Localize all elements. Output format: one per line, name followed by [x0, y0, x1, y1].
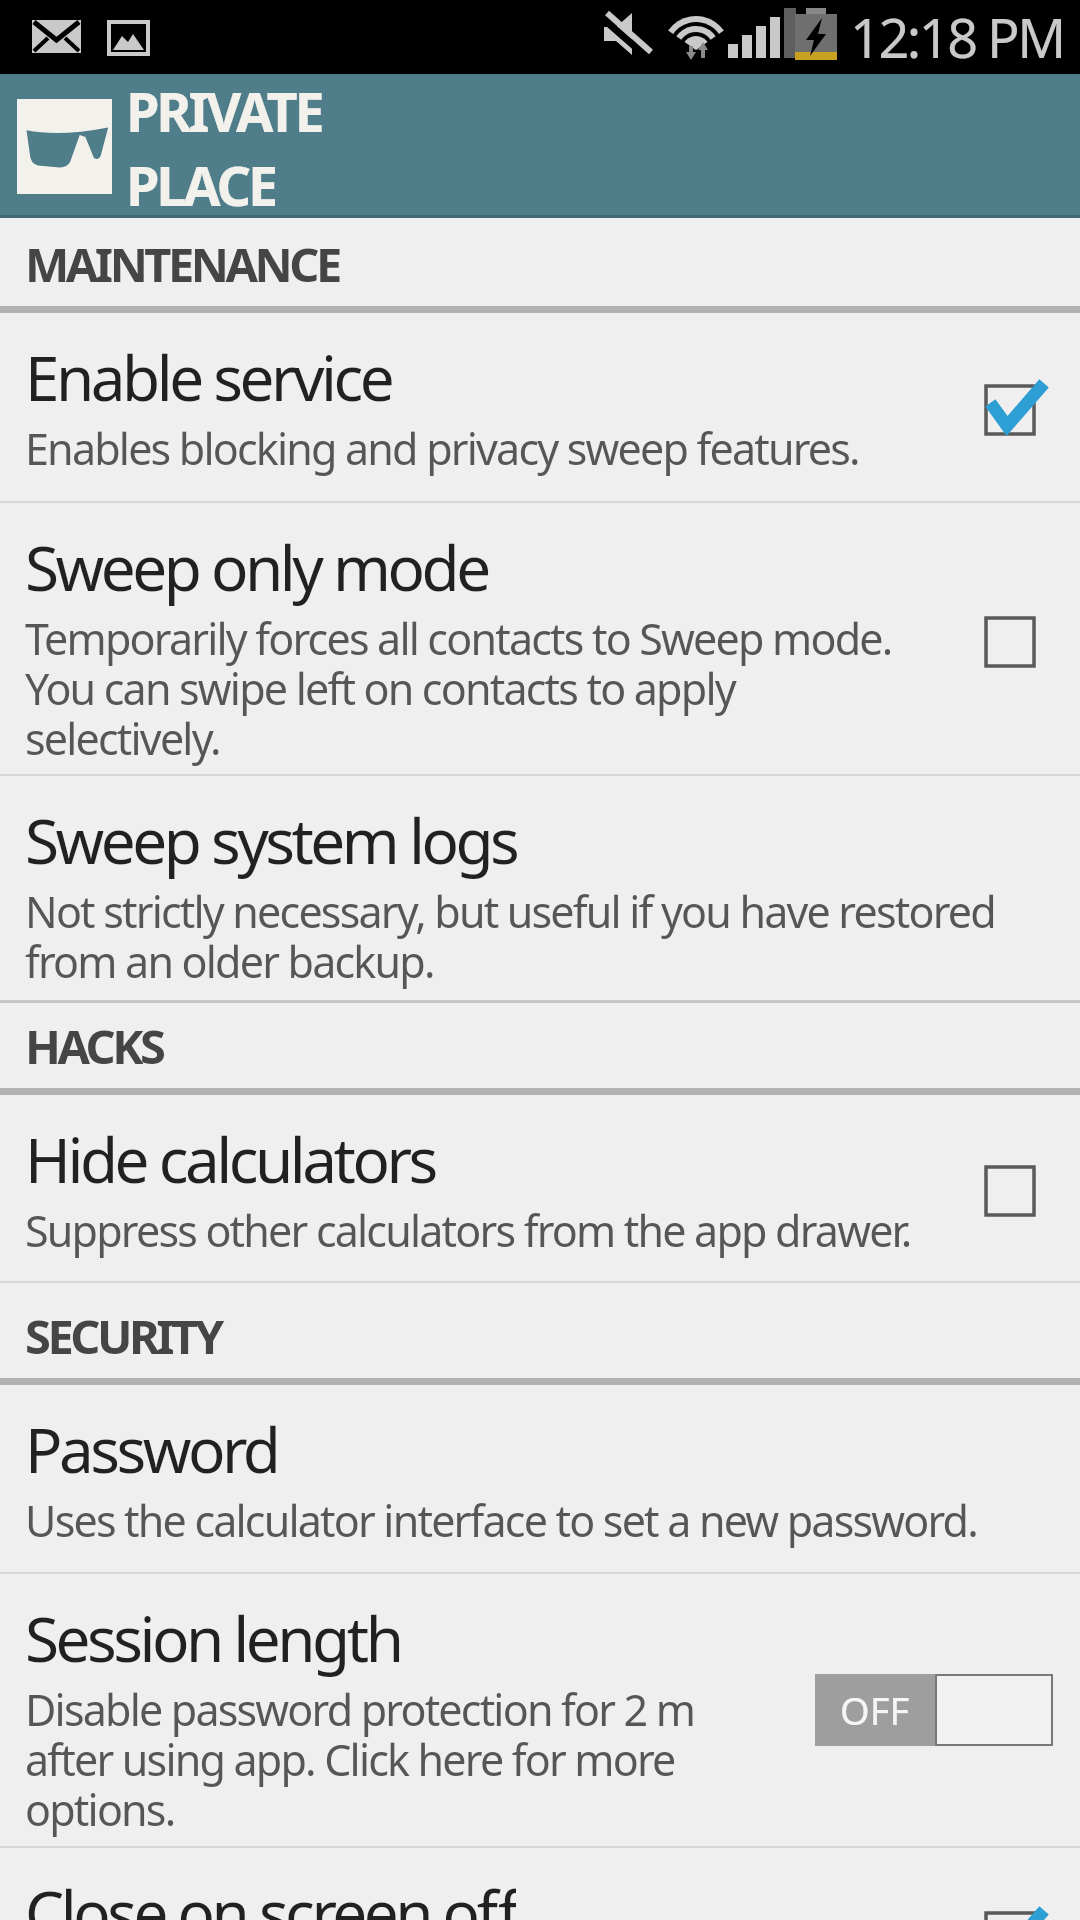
button[interactable]: Sweep only mode [0, 503, 1080, 774]
button[interactable]: Close on screen off [0, 1848, 1080, 1920]
staticText: Enables blocking and privacy sweep featu… [25, 419, 859, 478]
staticText: Sweep only mode [25, 525, 488, 609]
button[interactable]: Password [0, 1385, 1080, 1572]
staticText: Enable service [25, 335, 392, 419]
button[interactable]: Session length [0, 1574, 1080, 1846]
staticText: OFF [840, 1684, 910, 1736]
staticText: HACKS [25, 1014, 163, 1078]
button[interactable]: OFF [815, 1674, 1053, 1746]
staticText: MAINTENANCE [25, 232, 339, 296]
button[interactable]: Sweep system logs [0, 776, 1080, 1000]
staticText: Session length [25, 1596, 401, 1680]
button[interactable]: Enable service [0, 313, 1080, 501]
staticText: Uses the calculator interface to set a n… [25, 1491, 977, 1550]
staticText: 12:18 PM [850, 0, 1064, 74]
staticText: Temporarily forces all contacts to Sweep… [25, 609, 892, 768]
staticText: Close on screen off [25, 1870, 516, 1920]
staticText: Sweep system logs [25, 798, 517, 882]
staticText: Disable password protection for 2 m afte… [25, 1680, 695, 1839]
staticText: Hide calculators [25, 1117, 435, 1201]
button[interactable]: Hide calculators [0, 1095, 1080, 1281]
staticText: SECURITY [25, 1304, 221, 1368]
staticText: Password [25, 1407, 278, 1491]
staticText: PRIVATE [126, 74, 322, 148]
staticText: Not strictly necessary, but useful if yo… [25, 882, 995, 991]
staticText: Suppress other calculators from the app … [25, 1201, 911, 1260]
staticText: PLACE [126, 148, 275, 218]
